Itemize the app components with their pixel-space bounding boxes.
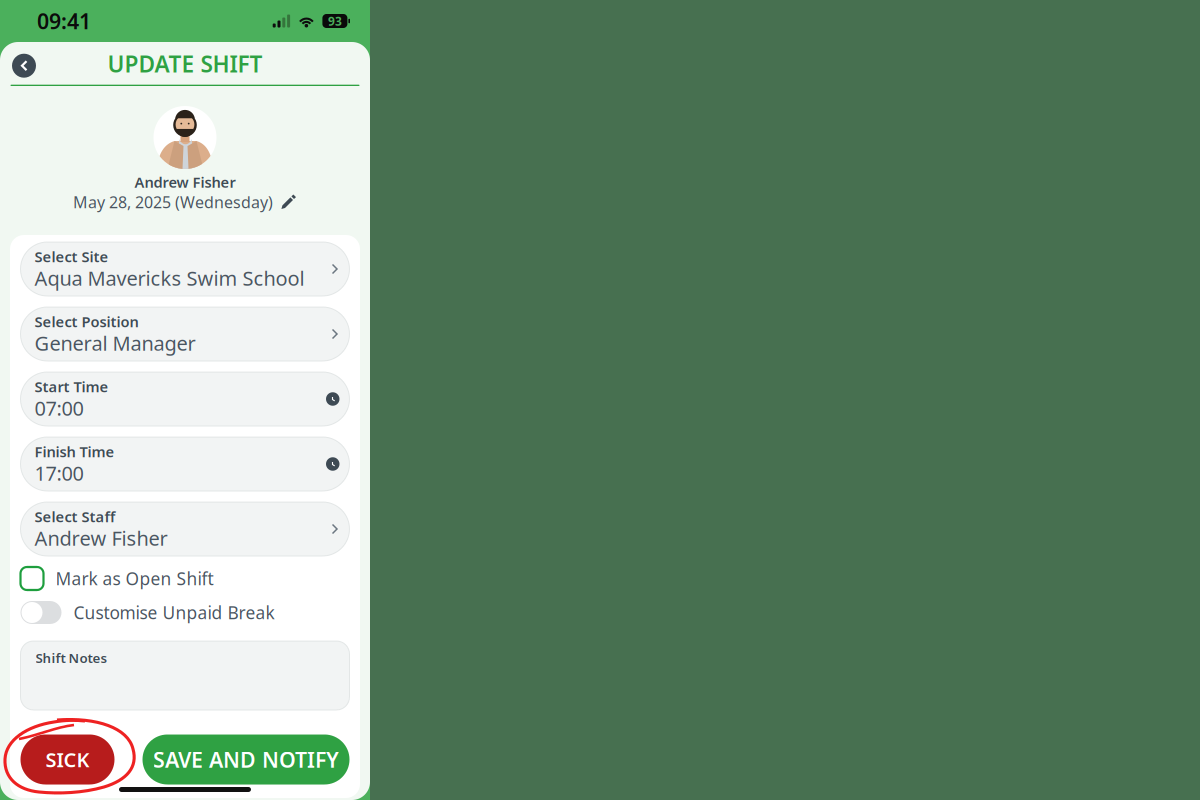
staticText: Andrew Fisher (34, 525, 167, 551)
staticText: 17:00 (34, 460, 83, 486)
staticText: Finish Time (34, 442, 114, 461)
staticText: Andrew Fisher (134, 172, 235, 192)
button[interactable]: Select Position (20, 307, 349, 361)
staticText: Start Time (34, 377, 108, 396)
staticText: SICK (45, 746, 89, 773)
button[interactable]: Start Time (20, 372, 349, 426)
staticText: General Manager (34, 330, 195, 356)
staticText: Mark as Open Shift (55, 567, 213, 590)
staticText: Customise Unpaid Break (73, 601, 274, 624)
staticText: 07:00 (34, 395, 83, 421)
button[interactable]: SICK (20, 734, 114, 784)
staticText: Select Site (34, 247, 108, 266)
button[interactable]: Select Staff (20, 502, 349, 556)
button[interactable]: Select Site (20, 242, 349, 296)
button[interactable]: Customise Unpaid Break (20, 601, 349, 624)
staticText: UPDATE SHIFT (107, 49, 262, 79)
button[interactable]: Edit shift date (73, 191, 297, 213)
button[interactable]: Mark as Open Shift (20, 567, 349, 590)
staticText: Select Position (34, 312, 138, 331)
button[interactable]: SAVE AND NOTIFY (142, 734, 349, 784)
button[interactable]: Finish Time (20, 437, 349, 491)
button[interactable]: Back (6, 46, 42, 82)
staticText: Select Staff (34, 507, 115, 526)
staticText: 93 (328, 13, 342, 29)
staticText: Aqua Mavericks Swim School (34, 265, 304, 291)
staticText: SAVE AND NOTIFY (153, 745, 339, 774)
staticText: Shift Notes (35, 649, 107, 667)
staticText: 09:41 (37, 7, 91, 35)
staticText: May 28, 2025 (Wednesday) (73, 191, 273, 213)
